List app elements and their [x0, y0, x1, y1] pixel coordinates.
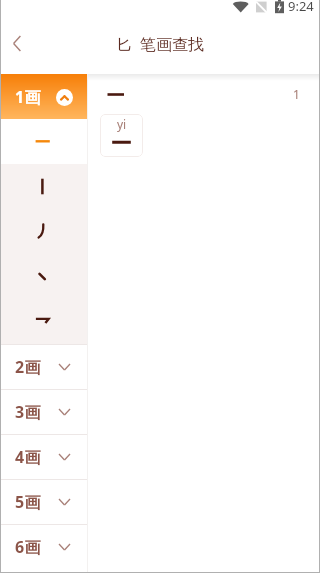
- button[interactable]: 6画: [1, 524, 87, 569]
- staticText: 6画: [15, 536, 41, 558]
- button[interactable]: Stroke: [1, 209, 87, 254]
- staticText: 3画: [15, 401, 41, 423]
- staticText: 4画: [15, 446, 41, 468]
- button[interactable]: 3画: [1, 389, 87, 434]
- staticText: 1画: [15, 86, 41, 108]
- button[interactable]: 5画: [1, 479, 87, 524]
- button[interactable]: 1画: [1, 74, 87, 119]
- button[interactable]: 2画: [1, 344, 87, 389]
- staticText: 匕: [116, 35, 132, 55]
- button[interactable]: Character: [100, 114, 143, 157]
- button[interactable]: Stroke: [1, 164, 87, 209]
- button[interactable]: 4画: [1, 434, 87, 479]
- button[interactable]: Back: [1, 27, 33, 59]
- staticText: 5画: [15, 491, 41, 513]
- staticText: 9:24: [288, 0, 314, 15]
- staticText: 1: [293, 86, 300, 102]
- button[interactable]: Stroke: [1, 299, 87, 344]
- staticText: yi: [117, 116, 127, 132]
- staticText: 笔画查找: [140, 35, 204, 55]
- button[interactable]: Stroke: [1, 254, 87, 299]
- button[interactable]: Stroke: [1, 119, 87, 164]
- staticText: 2画: [15, 356, 41, 378]
